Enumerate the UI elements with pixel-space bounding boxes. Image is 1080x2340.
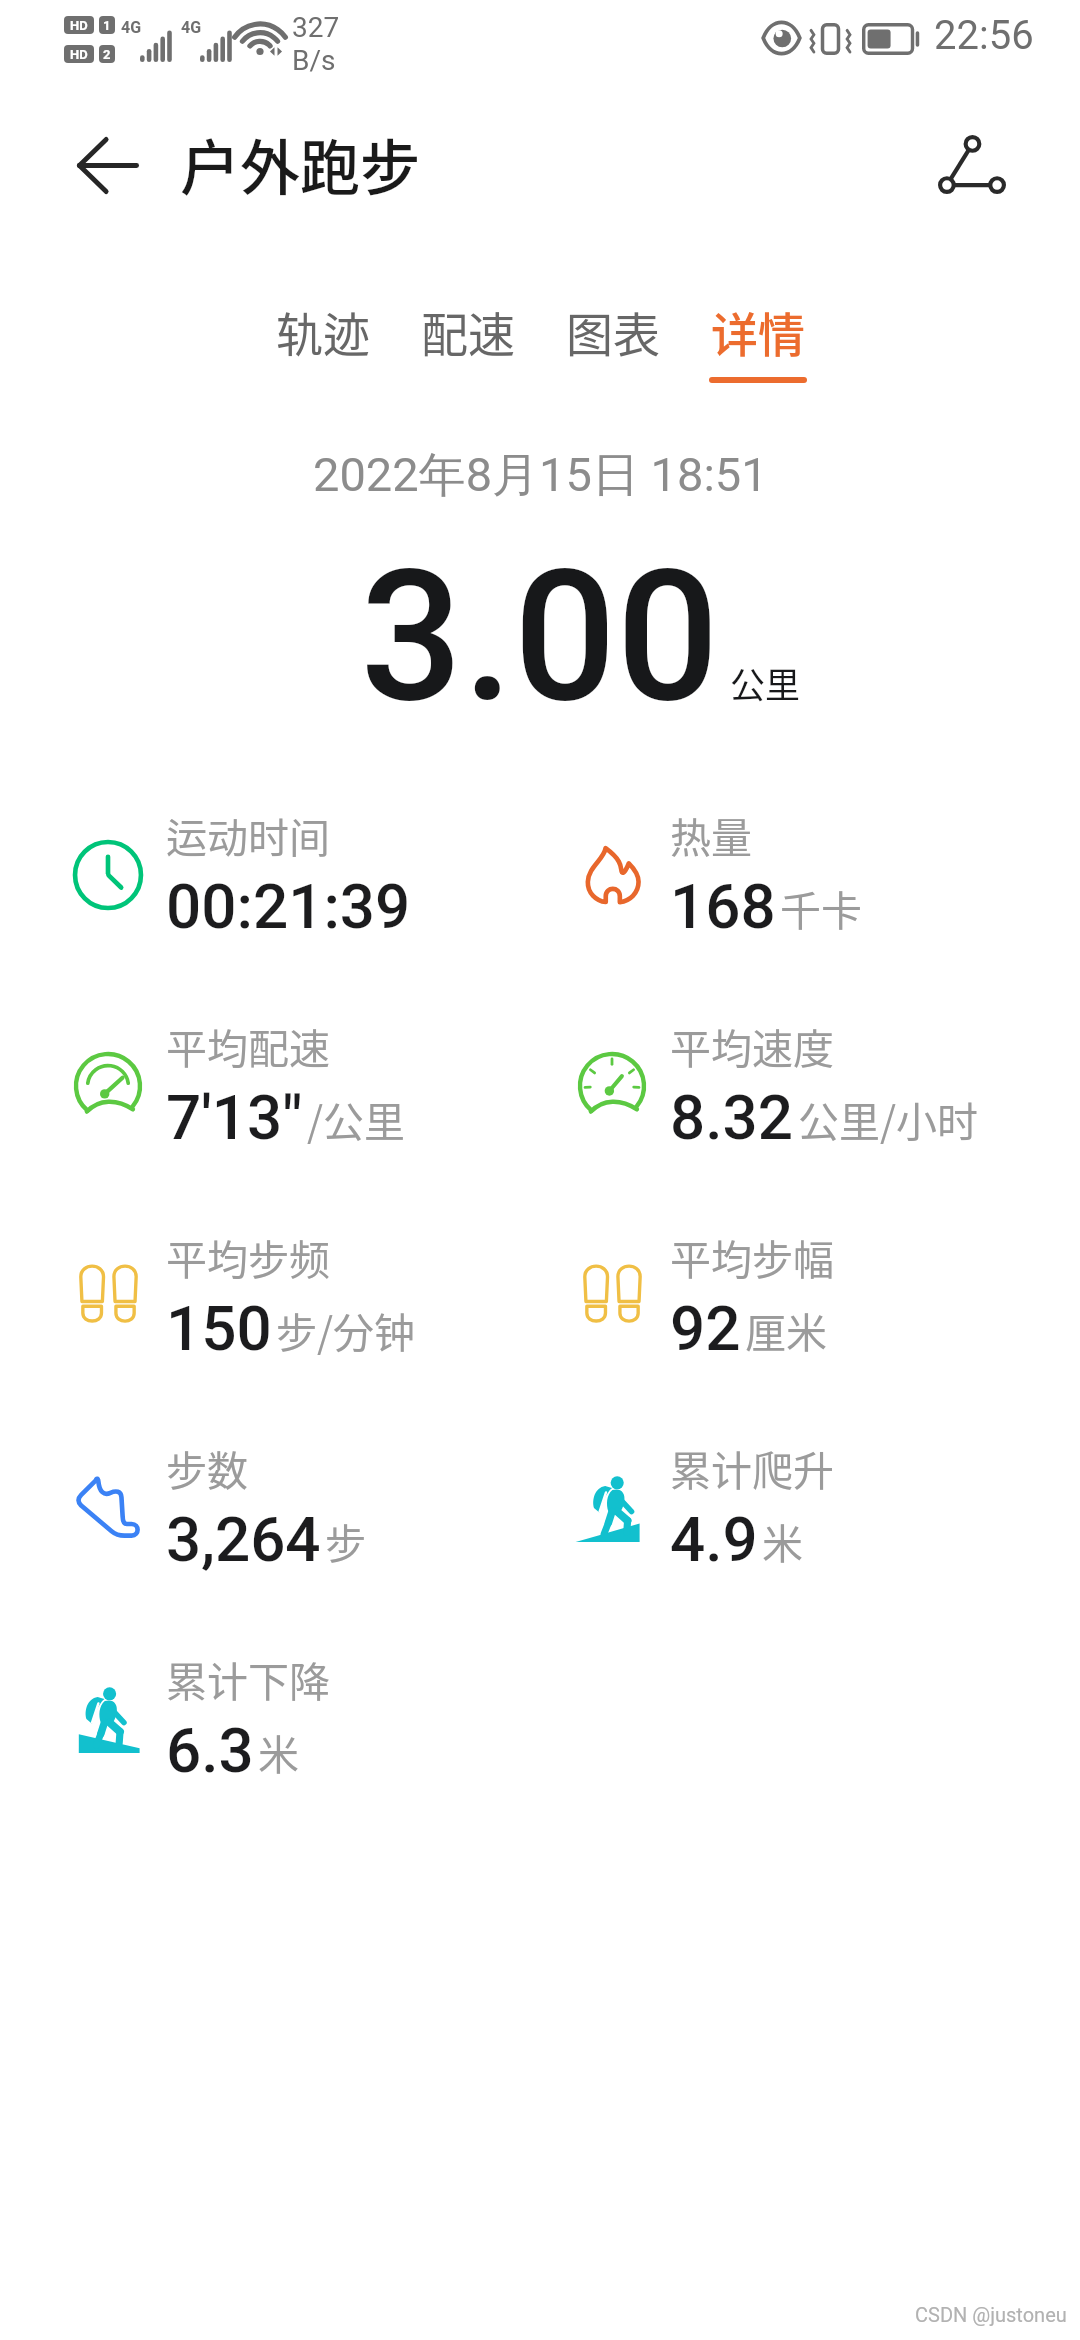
- button[interactable]: [544, 788, 1004, 938]
- staticText: 327: [292, 11, 340, 44]
- staticText: HD: [70, 47, 88, 62]
- staticText: 22:56: [934, 12, 1034, 59]
- staticText: 累计下降: [166, 1649, 330, 1708]
- button[interactable]: [40, 1632, 500, 1782]
- staticText: 公里/小时: [798, 1089, 979, 1148]
- staticText: 8.32: [670, 1081, 794, 1154]
- staticText: 配速: [421, 297, 515, 365]
- staticText: 户外跑步: [180, 120, 420, 207]
- button[interactable]: 轨迹: [274, 297, 372, 387]
- button[interactable]: 配速: [419, 297, 517, 387]
- staticText: 7'13": [166, 1081, 303, 1154]
- staticText: 2022年8月15日 18:51: [313, 446, 768, 505]
- staticText: 运动时间: [166, 805, 330, 864]
- button[interactable]: 详情: [709, 297, 807, 387]
- button[interactable]: [40, 788, 500, 938]
- button[interactable]: [40, 999, 500, 1149]
- staticText: 步: [325, 1511, 366, 1570]
- button[interactable]: Share: [924, 116, 1020, 212]
- staticText: /公里: [307, 1089, 406, 1148]
- staticText: 平均配速: [166, 1016, 330, 1075]
- button[interactable]: [40, 1210, 500, 1360]
- staticText: 厘米: [745, 1300, 827, 1359]
- button[interactable]: [544, 1210, 1004, 1360]
- button[interactable]: Back: [60, 117, 156, 213]
- staticText: 1: [103, 18, 111, 33]
- button[interactable]: [40, 1421, 500, 1571]
- staticText: 热量: [670, 805, 752, 864]
- staticText: 2: [103, 47, 111, 62]
- button[interactable]: [544, 1421, 1004, 1571]
- staticText: 3.00: [360, 531, 720, 743]
- staticText: HD: [70, 18, 88, 33]
- staticText: 4.9: [670, 1503, 758, 1576]
- staticText: 轨迹: [276, 297, 370, 365]
- staticText: 平均步频: [166, 1227, 330, 1286]
- staticText: 00:21:39: [166, 870, 411, 943]
- staticText: 168: [670, 870, 776, 943]
- staticText: B/s: [292, 44, 336, 77]
- staticText: 千卡: [780, 878, 862, 937]
- button[interactable]: [544, 999, 1004, 1149]
- staticText: CSDN @justoneu: [915, 2303, 1067, 2326]
- staticText: 3,264: [166, 1503, 321, 1576]
- staticText: 平均步幅: [670, 1227, 834, 1286]
- button[interactable]: 图表: [564, 297, 662, 387]
- staticText: 平均速度: [670, 1016, 834, 1075]
- staticText: 公里: [730, 657, 801, 708]
- staticText: 150: [166, 1292, 272, 1365]
- staticText: 4G: [181, 18, 202, 37]
- staticText: 步/分钟: [276, 1300, 416, 1359]
- staticText: 米: [762, 1511, 803, 1570]
- staticText: 6.3: [166, 1714, 254, 1787]
- staticText: 步数: [166, 1438, 248, 1497]
- staticText: 图表: [566, 297, 660, 365]
- staticText: 92: [670, 1292, 741, 1365]
- staticText: 累计爬升: [670, 1438, 834, 1497]
- staticText: 米: [258, 1722, 299, 1781]
- staticText: 4G: [121, 18, 142, 37]
- staticText: 详情: [711, 297, 805, 365]
